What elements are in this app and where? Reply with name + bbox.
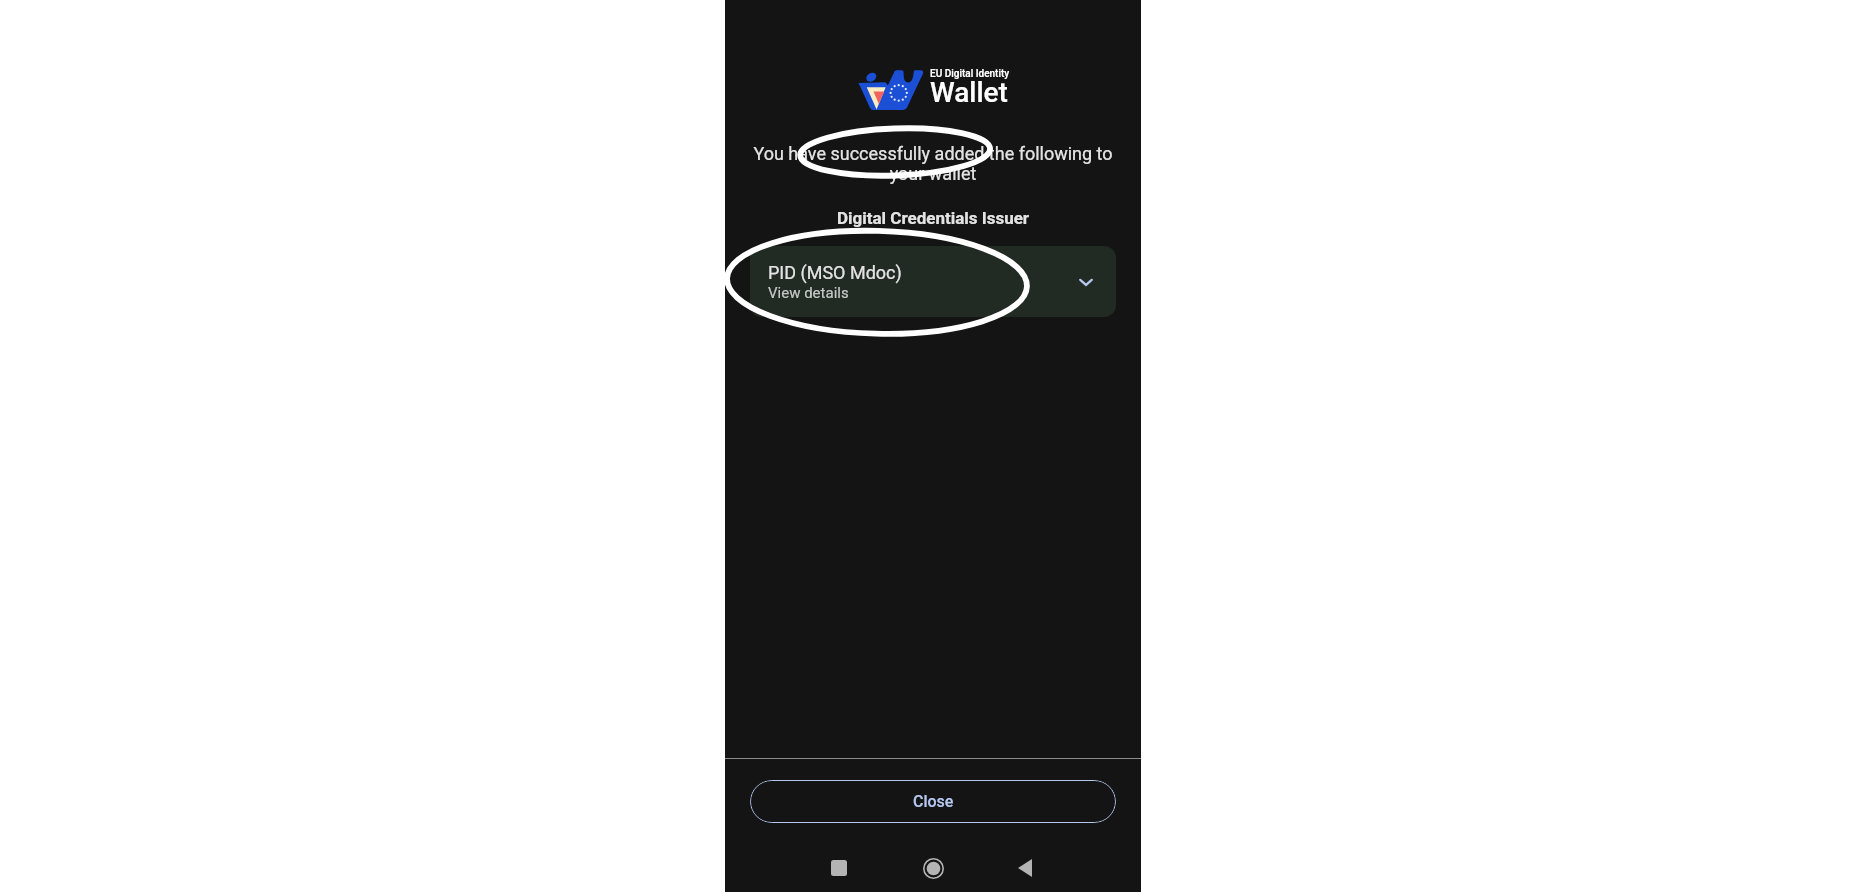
staticText: PID (MSO Mdoc) xyxy=(768,262,902,283)
button[interactable]: Close xyxy=(750,780,1116,823)
button[interactable]: PID (MSO Mdoc) xyxy=(750,246,1116,317)
button[interactable]: Recents xyxy=(822,851,856,885)
staticText: View details xyxy=(768,284,849,302)
other: Expand details xyxy=(1074,270,1098,294)
staticText: You have successfully added the followin… xyxy=(739,143,1127,184)
staticText: Close xyxy=(913,792,954,811)
button[interactable]: Back xyxy=(1008,851,1042,885)
button[interactable]: Home xyxy=(916,851,950,885)
staticText: EU Digital Identity xyxy=(930,68,1010,80)
staticText: Digital Credentials Issuer xyxy=(725,208,1141,228)
staticText: Wallet xyxy=(930,76,1008,109)
